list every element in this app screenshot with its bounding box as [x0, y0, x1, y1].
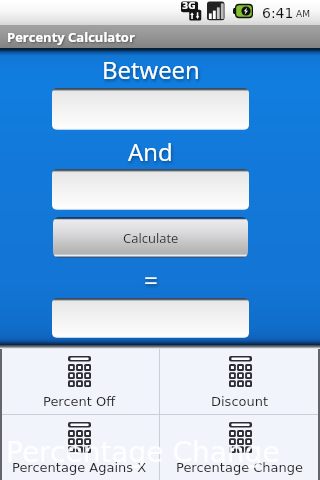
other: Battery charging [233, 3, 253, 19]
staticText: Percentage Change [176, 460, 304, 475]
staticText: 6:41 [262, 5, 294, 21]
other: Signal strength [207, 1, 226, 21]
staticText: = [144, 263, 158, 296]
button[interactable]: Percentage Agains X [0, 415, 159, 480]
staticText: Percentage Agains X [12, 460, 147, 475]
staticText: Percenty Calculator [7, 28, 135, 46]
staticText: And [128, 135, 173, 168]
button[interactable] [52, 88, 249, 130]
staticText: Percentage Change [6, 436, 280, 469]
button[interactable]: Percentage Change [160, 415, 320, 480]
staticText: Discount [211, 394, 269, 409]
button[interactable]: Discount [160, 349, 320, 414]
button[interactable]: Percent Off [0, 349, 159, 414]
staticText: Between [102, 53, 200, 86]
button[interactable] [52, 298, 249, 338]
button[interactable] [52, 169, 249, 210]
other: 3G network [181, 1, 204, 21]
button[interactable]: Calculate [53, 217, 248, 258]
staticText: Calculate [123, 229, 179, 247]
staticText: AM [296, 9, 310, 19]
staticText: Percent Off [43, 394, 116, 409]
staticText: 3G [182, 1, 196, 11]
